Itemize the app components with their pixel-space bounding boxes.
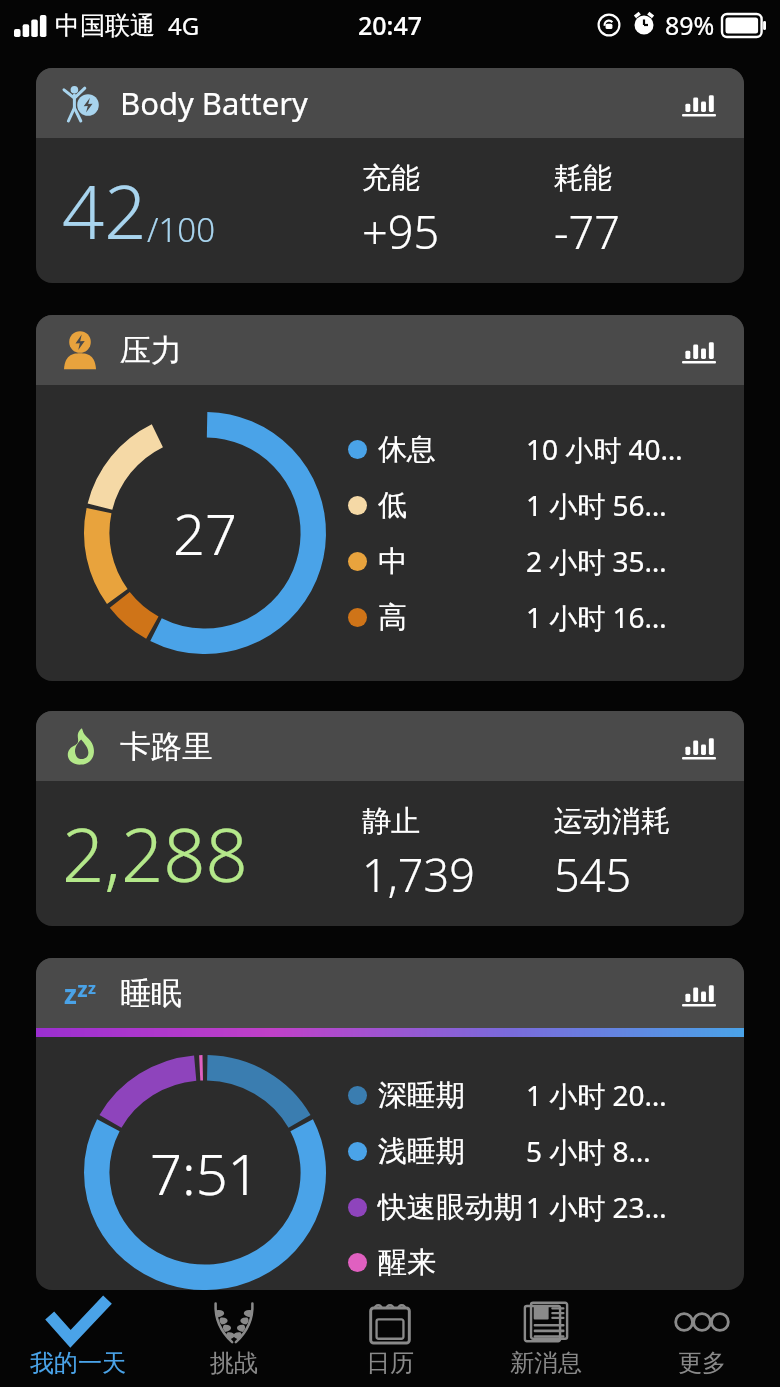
staticText: 545 xyxy=(554,844,632,905)
button[interactable]: View chart xyxy=(676,80,722,126)
staticText: 浅睡期 xyxy=(378,1133,465,1170)
button[interactable]: 更多 xyxy=(624,1290,780,1387)
staticText: /100 xyxy=(147,207,215,252)
staticText: 27 xyxy=(173,495,237,571)
staticText: -77 xyxy=(554,201,620,262)
button[interactable]: 深睡期 xyxy=(348,1067,736,1123)
staticText: z xyxy=(77,975,88,1004)
staticText: 1,739 xyxy=(362,844,475,905)
staticText: 2 小时 35… xyxy=(526,542,667,580)
staticText: 低 xyxy=(378,487,407,524)
staticText: 睡眠 xyxy=(120,974,182,1013)
button[interactable]: 新消息 xyxy=(468,1290,624,1387)
button[interactable]: z xyxy=(36,958,744,1028)
button[interactable]: 日历 xyxy=(312,1290,468,1387)
staticText: 89% xyxy=(665,8,715,42)
button[interactable]: 压力 xyxy=(36,315,744,385)
staticText: 新消息 xyxy=(510,1348,582,1378)
staticText: Body Battery xyxy=(120,82,308,124)
staticText: 1 小时 20… xyxy=(526,1076,667,1114)
button[interactable]: View chart xyxy=(676,970,722,1016)
staticText: 压力 xyxy=(120,331,182,370)
staticText: 更多 xyxy=(678,1348,726,1378)
staticText: 深睡期 xyxy=(378,1077,465,1114)
button[interactable]: 浅睡期 xyxy=(348,1123,736,1179)
staticText: z xyxy=(88,977,96,999)
staticText: 4G xyxy=(168,9,200,42)
button[interactable]: 休息 xyxy=(348,421,736,477)
staticText: 醒来 xyxy=(378,1244,436,1281)
staticText: 挑战 xyxy=(210,1348,258,1378)
staticText: 耗能 xyxy=(554,160,612,197)
staticText: 2,288 xyxy=(62,803,248,904)
staticText: 充能 xyxy=(362,160,420,197)
button[interactable]: Body Battery xyxy=(36,68,744,283)
button[interactable]: z xyxy=(36,958,744,1290)
staticText: z xyxy=(64,976,77,1011)
button[interactable]: 压力 xyxy=(36,315,744,681)
staticText: 日历 xyxy=(366,1348,414,1378)
button[interactable]: 高 xyxy=(348,589,736,645)
staticText: 中 xyxy=(378,543,407,580)
button[interactable]: 快速眼动期 xyxy=(348,1179,736,1235)
staticText: 高 xyxy=(378,599,407,636)
button[interactable]: 卡路里 xyxy=(36,711,744,781)
button[interactable]: 我的一天 xyxy=(0,1290,156,1387)
staticText: 20:47 xyxy=(358,8,423,42)
staticText: 卡路里 xyxy=(120,727,213,766)
staticText: +95 xyxy=(362,201,440,262)
button[interactable]: 中 xyxy=(348,533,736,589)
button[interactable]: 卡路里 xyxy=(36,711,744,926)
staticText: 10 小时 40… xyxy=(526,430,683,468)
staticText: 7:51 xyxy=(150,1135,260,1211)
staticText: 快速眼动期 xyxy=(378,1189,523,1226)
staticText: 1 小时 23… xyxy=(526,1188,667,1226)
button[interactable]: View chart xyxy=(676,723,722,769)
button[interactable]: 挑战 xyxy=(156,1290,312,1387)
button[interactable]: Body Battery xyxy=(36,68,744,138)
staticText: 休息 xyxy=(378,431,436,468)
staticText: 静止 xyxy=(362,803,420,840)
button[interactable]: View chart xyxy=(676,327,722,373)
staticText: 运动消耗 xyxy=(554,803,670,840)
staticText: 42 xyxy=(62,160,147,261)
staticText: 1 小时 16… xyxy=(526,598,667,636)
staticText: 中国联通 xyxy=(55,10,155,41)
button[interactable]: 低 xyxy=(348,477,736,533)
button[interactable]: 醒来 xyxy=(348,1235,736,1290)
staticText: 我的一天 xyxy=(30,1348,126,1378)
staticText: 5 小时 8… xyxy=(526,1132,651,1170)
staticText: 1 小时 56… xyxy=(526,486,667,524)
